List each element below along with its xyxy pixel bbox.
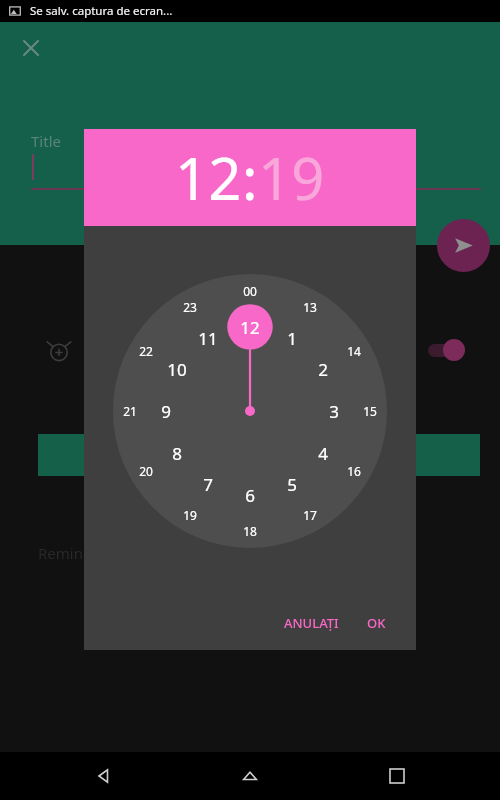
button[interactable]: Add alarm <box>38 330 80 372</box>
staticText: 7 <box>203 473 213 496</box>
button[interactable]: ANULAȚI <box>276 606 347 640</box>
button[interactable]: 12 <box>175 138 242 217</box>
button[interactable]: 00 <box>235 276 265 306</box>
button[interactable]: 7 <box>191 467 225 501</box>
staticText: 17 <box>303 507 317 523</box>
button[interactable]: 10 <box>160 352 194 386</box>
button[interactable]: Home <box>230 756 270 796</box>
staticText: 2 <box>318 358 328 381</box>
button[interactable]: 8 <box>160 436 194 470</box>
button[interactable]: 20 <box>131 456 161 486</box>
staticText: 3 <box>329 400 339 423</box>
button[interactable]: 3 <box>317 394 351 428</box>
staticText: Title <box>31 131 61 151</box>
button[interactable]: Back <box>83 756 123 796</box>
button[interactable]: 19 <box>258 138 325 217</box>
staticText: Se salv. captura de ecran... <box>30 3 173 19</box>
staticText: 18 <box>243 523 257 539</box>
staticText: 15 <box>363 403 377 419</box>
button[interactable]: 21 <box>115 396 145 426</box>
staticText: 20 <box>139 463 153 479</box>
staticText: 21 <box>123 403 137 419</box>
button[interactable]: 11 <box>191 321 225 355</box>
staticText: 11 <box>198 327 218 350</box>
button[interactable]: 22 <box>131 336 161 366</box>
staticText: 22 <box>139 343 153 359</box>
staticText: 6 <box>245 484 255 507</box>
button[interactable]: 15 <box>355 396 385 426</box>
button[interactable]: Toggle reminder <box>420 336 480 364</box>
staticText: 12 <box>240 316 260 339</box>
staticText: 14 <box>347 343 361 359</box>
button[interactable]: 17 <box>295 500 325 530</box>
button[interactable] <box>38 434 480 476</box>
button[interactable]: Recents <box>377 756 417 796</box>
button[interactable]: 13 <box>295 292 325 322</box>
staticText: 13 <box>303 299 317 315</box>
button[interactable]: 16 <box>339 456 369 486</box>
button[interactable]: 5 <box>275 467 309 501</box>
button[interactable]: 1 <box>275 321 309 355</box>
staticText: 16 <box>347 463 361 479</box>
button[interactable]: Close <box>15 32 47 64</box>
staticText: 1 <box>287 327 297 350</box>
staticText: 9 <box>161 400 171 423</box>
staticText: 4 <box>318 442 328 465</box>
button[interactable]: 4 <box>306 436 340 470</box>
staticText: 19 <box>183 507 197 523</box>
button[interactable]: 19 <box>175 500 205 530</box>
staticText: Reminder <box>38 543 107 563</box>
staticText: 5 <box>287 473 297 496</box>
staticText: ANULAȚI <box>284 614 339 632</box>
button[interactable]: 23 <box>175 292 205 322</box>
staticText: 10 <box>167 358 187 381</box>
staticText: OK <box>367 614 386 632</box>
button[interactable]: 6 <box>233 478 267 512</box>
button[interactable]: 2 <box>306 352 340 386</box>
button[interactable]: 9 <box>149 394 183 428</box>
staticText: 23 <box>183 299 197 315</box>
button[interactable]: 18 <box>235 516 265 546</box>
button[interactable]: 12 <box>233 310 267 344</box>
staticText: : <box>242 138 258 217</box>
staticText: 8 <box>172 442 182 465</box>
button[interactable]: Send <box>437 219 490 272</box>
button[interactable]: OK <box>359 606 394 640</box>
staticText: 00 <box>243 283 257 299</box>
button[interactable]: 14 <box>339 336 369 366</box>
